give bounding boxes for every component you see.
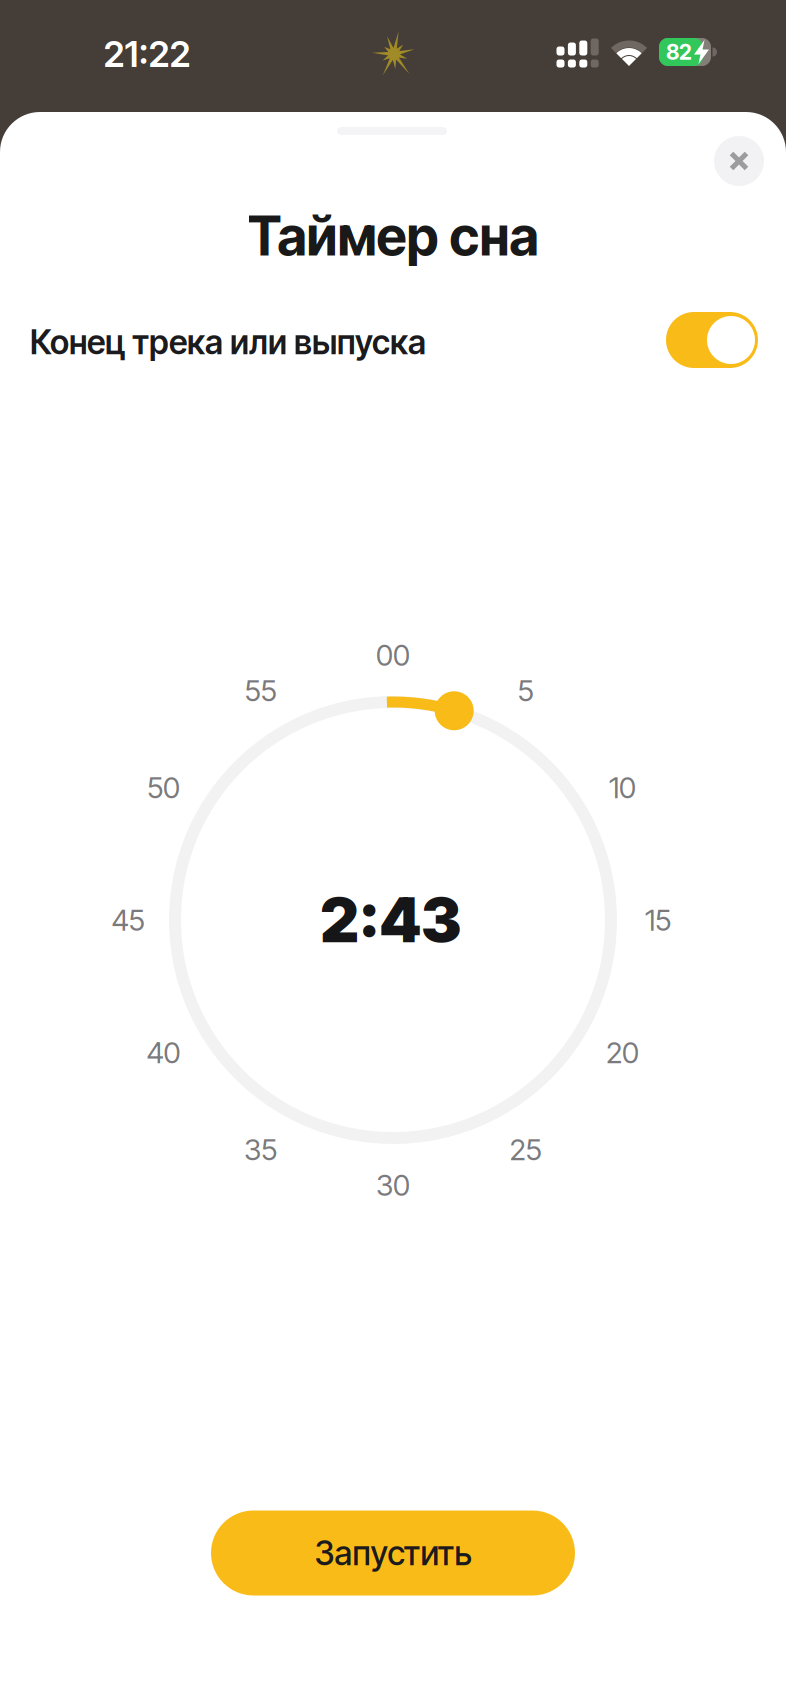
staticText: 35 xyxy=(244,1132,277,1167)
button[interactable]: Конец трека или выпуска xyxy=(666,312,758,368)
staticText: 40 xyxy=(146,1035,180,1070)
staticText: 00 xyxy=(376,638,410,672)
staticText: 82 xyxy=(666,39,692,65)
staticText: Запустить xyxy=(314,1533,471,1573)
staticText: 5 xyxy=(517,673,533,708)
staticText: 25 xyxy=(509,1132,541,1167)
button[interactable]: Запустить xyxy=(211,1510,575,1595)
staticText: 30 xyxy=(376,1168,410,1202)
staticText: 55 xyxy=(244,673,276,708)
staticText: 45 xyxy=(111,903,144,937)
staticText: Конец трека или выпуска xyxy=(30,322,426,362)
staticText: 20 xyxy=(606,1035,639,1070)
staticText: 50 xyxy=(147,770,180,805)
staticText: 21:22 xyxy=(103,33,190,75)
button[interactable]: Close xyxy=(714,136,764,186)
staticText: 2:43 xyxy=(320,884,461,956)
staticText: 10 xyxy=(609,770,636,805)
staticText: Таймер сна xyxy=(247,204,538,267)
staticText: 15 xyxy=(645,903,671,937)
